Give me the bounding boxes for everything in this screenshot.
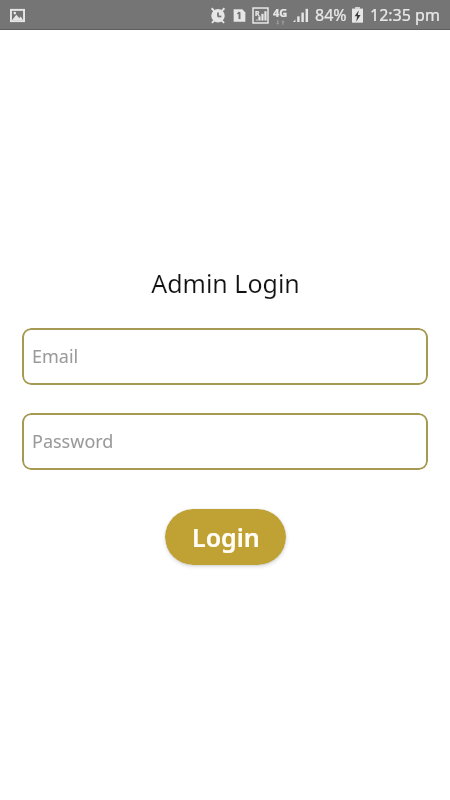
button[interactable]: Email bbox=[22, 328, 428, 385]
staticText: Admin Login bbox=[151, 266, 300, 300]
button[interactable]: Login bbox=[165, 509, 286, 565]
staticText: 4G bbox=[273, 5, 288, 20]
staticText: 84% bbox=[315, 4, 347, 26]
staticText: Email bbox=[32, 344, 79, 369]
button[interactable]: Password bbox=[22, 413, 428, 470]
staticText: R bbox=[255, 9, 260, 19]
staticText: Login bbox=[192, 520, 260, 554]
other: Screenshot captured bbox=[10, 8, 25, 23]
staticText: 12:35 pm bbox=[370, 4, 440, 26]
staticText: Password bbox=[32, 429, 114, 454]
